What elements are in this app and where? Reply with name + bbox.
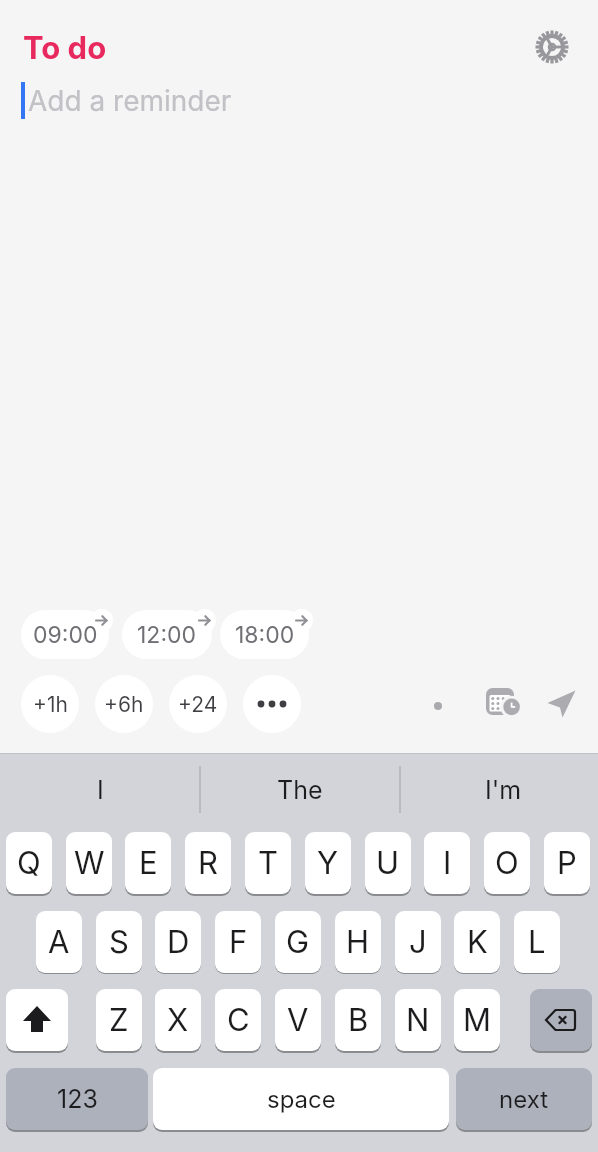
button[interactable] — [530, 989, 592, 1051]
staticText: The — [277, 775, 323, 805]
button[interactable]: G — [275, 911, 321, 973]
staticText: 123 — [57, 1084, 98, 1114]
button[interactable] — [546, 688, 578, 720]
button[interactable]: P — [544, 832, 590, 894]
button[interactable]: The — [240, 770, 360, 810]
staticText: X — [167, 1001, 189, 1039]
staticText: M — [463, 1001, 492, 1039]
button[interactable]: A — [36, 911, 82, 973]
button[interactable]: N — [395, 989, 441, 1051]
button[interactable]: Z — [96, 989, 142, 1051]
staticText: B — [348, 1001, 369, 1039]
staticText: Add a reminder — [28, 84, 232, 118]
button[interactable]: L — [514, 911, 560, 973]
button[interactable] — [534, 29, 570, 65]
button[interactable]: 09:00 — [21, 610, 109, 659]
staticText: G — [286, 923, 310, 961]
staticText: +24 — [178, 692, 218, 717]
button[interactable]: E — [125, 832, 171, 894]
staticText: Y — [317, 844, 339, 882]
staticText: H — [346, 923, 370, 961]
staticText: Q — [17, 844, 41, 882]
button[interactable]: space — [153, 1068, 449, 1130]
button[interactable]: M — [454, 989, 500, 1051]
button[interactable]: U — [365, 832, 411, 894]
staticText: 09:00 — [33, 621, 98, 649]
staticText: E — [139, 844, 158, 882]
button[interactable]: J — [395, 911, 441, 973]
button[interactable]: B — [335, 989, 381, 1051]
staticText: N — [406, 1001, 430, 1039]
button[interactable] — [243, 675, 301, 733]
button[interactable]: X — [155, 989, 201, 1051]
button[interactable] — [6, 989, 68, 1051]
button[interactable]: K — [454, 911, 500, 973]
button[interactable]: V — [275, 989, 321, 1051]
button[interactable]: 18:00 — [220, 610, 309, 659]
staticText: U — [376, 844, 400, 882]
button[interactable]: H — [335, 911, 381, 973]
button[interactable]: S — [96, 911, 142, 973]
staticText: T — [258, 844, 279, 882]
button[interactable]: 123 — [6, 1068, 148, 1130]
staticText: next — [499, 1085, 549, 1114]
button[interactable]: next — [456, 1068, 592, 1130]
button[interactable]: D — [155, 911, 201, 973]
button[interactable]: Q — [6, 832, 52, 894]
staticText: R — [198, 844, 218, 882]
staticText: W — [74, 844, 105, 882]
button[interactable]: +6h — [95, 675, 153, 733]
staticText: J — [409, 923, 427, 961]
staticText: O — [495, 844, 519, 882]
button[interactable]: O — [484, 832, 530, 894]
button[interactable]: +1h — [21, 675, 79, 733]
button[interactable]: T — [245, 832, 291, 894]
button[interactable]: C — [215, 989, 261, 1051]
staticText: I'm — [485, 775, 522, 805]
button[interactable]: I'm — [443, 770, 563, 810]
staticText: I — [97, 775, 104, 805]
button[interactable]: 12:00 — [122, 610, 212, 659]
button[interactable]: I — [40, 770, 160, 810]
staticText: +6h — [104, 692, 144, 717]
staticText: L — [528, 923, 546, 961]
button[interactable]: I — [424, 832, 470, 894]
button[interactable] — [484, 686, 522, 722]
staticText: 18:00 — [235, 621, 295, 649]
button[interactable]: R — [185, 832, 231, 894]
button[interactable]: F — [215, 911, 261, 973]
staticText: I — [443, 844, 452, 882]
staticText: S — [109, 923, 129, 961]
staticText: +1h — [33, 692, 68, 717]
button[interactable]: Y — [305, 832, 351, 894]
staticText: To do — [23, 29, 107, 67]
staticText: D — [167, 923, 190, 961]
staticText: C — [227, 1001, 250, 1039]
button[interactable]: +24 — [169, 675, 227, 733]
staticText: K — [467, 923, 488, 961]
staticText: A — [48, 923, 70, 961]
staticText: 12:00 — [137, 621, 197, 649]
staticText: F — [229, 923, 248, 961]
button[interactable]: W — [66, 832, 112, 894]
staticText: V — [287, 1001, 309, 1039]
staticText: P — [557, 844, 577, 882]
staticText: space — [267, 1085, 336, 1114]
staticText: Z — [109, 1001, 129, 1039]
